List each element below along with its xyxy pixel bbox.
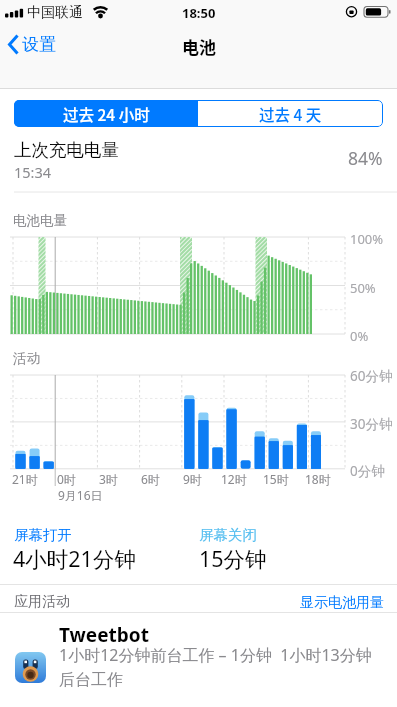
staticText: 21时: [12, 471, 38, 487]
staticText: 50%: [350, 279, 376, 297]
button[interactable]: Tweetbot: [0, 613, 397, 707]
staticText: 18:50: [182, 4, 216, 22]
staticText: 过去 24 小时: [63, 103, 150, 125]
staticText: 屏幕关闭: [199, 526, 257, 544]
staticText: 0%: [350, 327, 369, 345]
staticText: 15时: [263, 471, 289, 487]
staticText: 0分钟: [350, 462, 385, 480]
staticText: 84%: [348, 146, 383, 170]
staticText: 0时: [57, 471, 76, 487]
staticText: 应用活动: [14, 593, 70, 611]
staticText: Tweetbot: [59, 622, 149, 648]
staticText: 9时: [183, 471, 202, 487]
staticText: 中国联通: [27, 4, 83, 22]
staticText: 9月16日: [58, 487, 103, 503]
staticText: 60分钟: [350, 367, 393, 385]
staticText: 显示电池用量: [300, 594, 384, 612]
staticText: 30分钟: [350, 415, 393, 433]
staticText: 4小时21分钟: [13, 544, 136, 573]
staticText: 100%: [350, 230, 384, 248]
staticText: 活动: [13, 350, 40, 367]
button[interactable]: 过去 24 小时: [14, 100, 198, 127]
staticText: 3时: [99, 471, 118, 487]
staticText: 设置: [22, 34, 56, 55]
staticText: 电池: [182, 34, 216, 59]
staticText: 电池电量: [13, 212, 67, 229]
staticText: 15:34: [14, 162, 52, 182]
staticText: 屏幕打开: [14, 526, 72, 544]
staticText: 6时: [141, 471, 160, 487]
staticText: 1小时12分钟前台工作 – 1分钟 1小时13分钟 后台工作: [59, 644, 372, 689]
button[interactable]: 显示电池用量: [0, 587, 384, 612]
staticText: 15分钟: [199, 544, 267, 573]
button[interactable]: 设置: [0, 28, 80, 64]
button[interactable]: 过去 4 天: [198, 100, 383, 127]
staticText: 12时: [221, 471, 247, 487]
staticText: 18时: [305, 471, 331, 487]
staticText: 过去 4 天: [259, 103, 322, 125]
staticText: 上次充电电量: [14, 139, 119, 161]
